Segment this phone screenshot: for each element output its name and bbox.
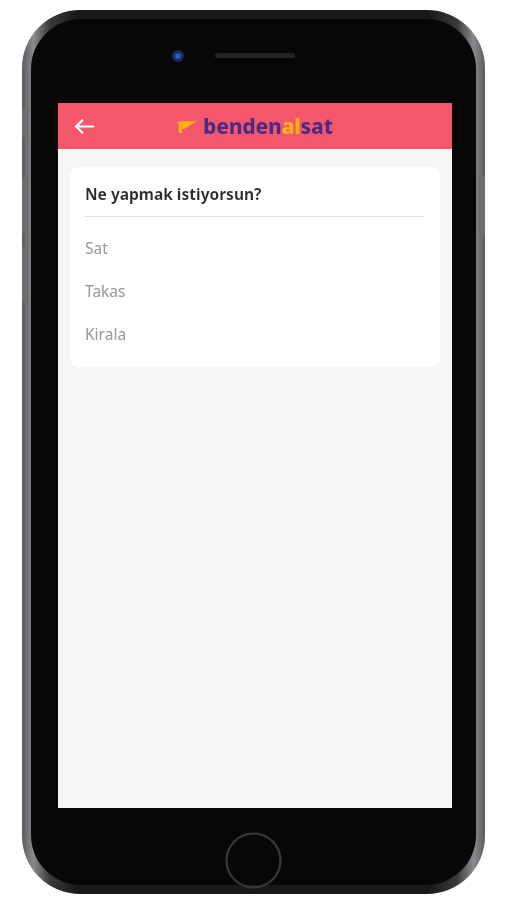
staticText: Sat — [85, 237, 108, 258]
button[interactable]: Back — [64, 106, 104, 146]
staticText: Kirala — [85, 323, 127, 344]
staticText: Takas — [85, 280, 126, 301]
staticText: bendenalsat — [203, 112, 333, 141]
staticText: Ne yapmak istiyorsun? — [85, 183, 262, 204]
button[interactable]: Kirala — [70, 312, 440, 355]
button[interactable]: Takas — [70, 269, 440, 312]
button[interactable]: Sat — [70, 226, 440, 269]
